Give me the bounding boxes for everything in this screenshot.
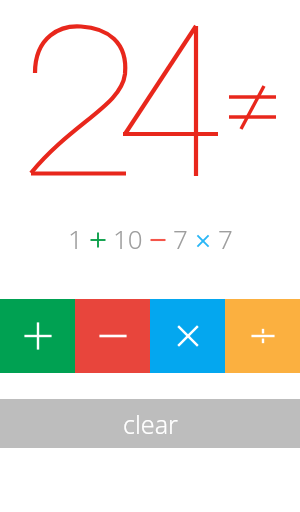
staticText: 7	[218, 221, 233, 256]
staticText: 10	[113, 221, 143, 256]
button[interactable]: Minus	[75, 299, 150, 373]
button[interactable]: Multiply	[150, 299, 225, 373]
button[interactable]: Divide	[225, 299, 300, 373]
staticText: 7	[173, 221, 188, 256]
button[interactable]: Plus	[0, 299, 75, 373]
staticText: clear	[123, 407, 178, 441]
staticText: 1	[68, 221, 83, 256]
button[interactable]: clear	[0, 399, 300, 448]
